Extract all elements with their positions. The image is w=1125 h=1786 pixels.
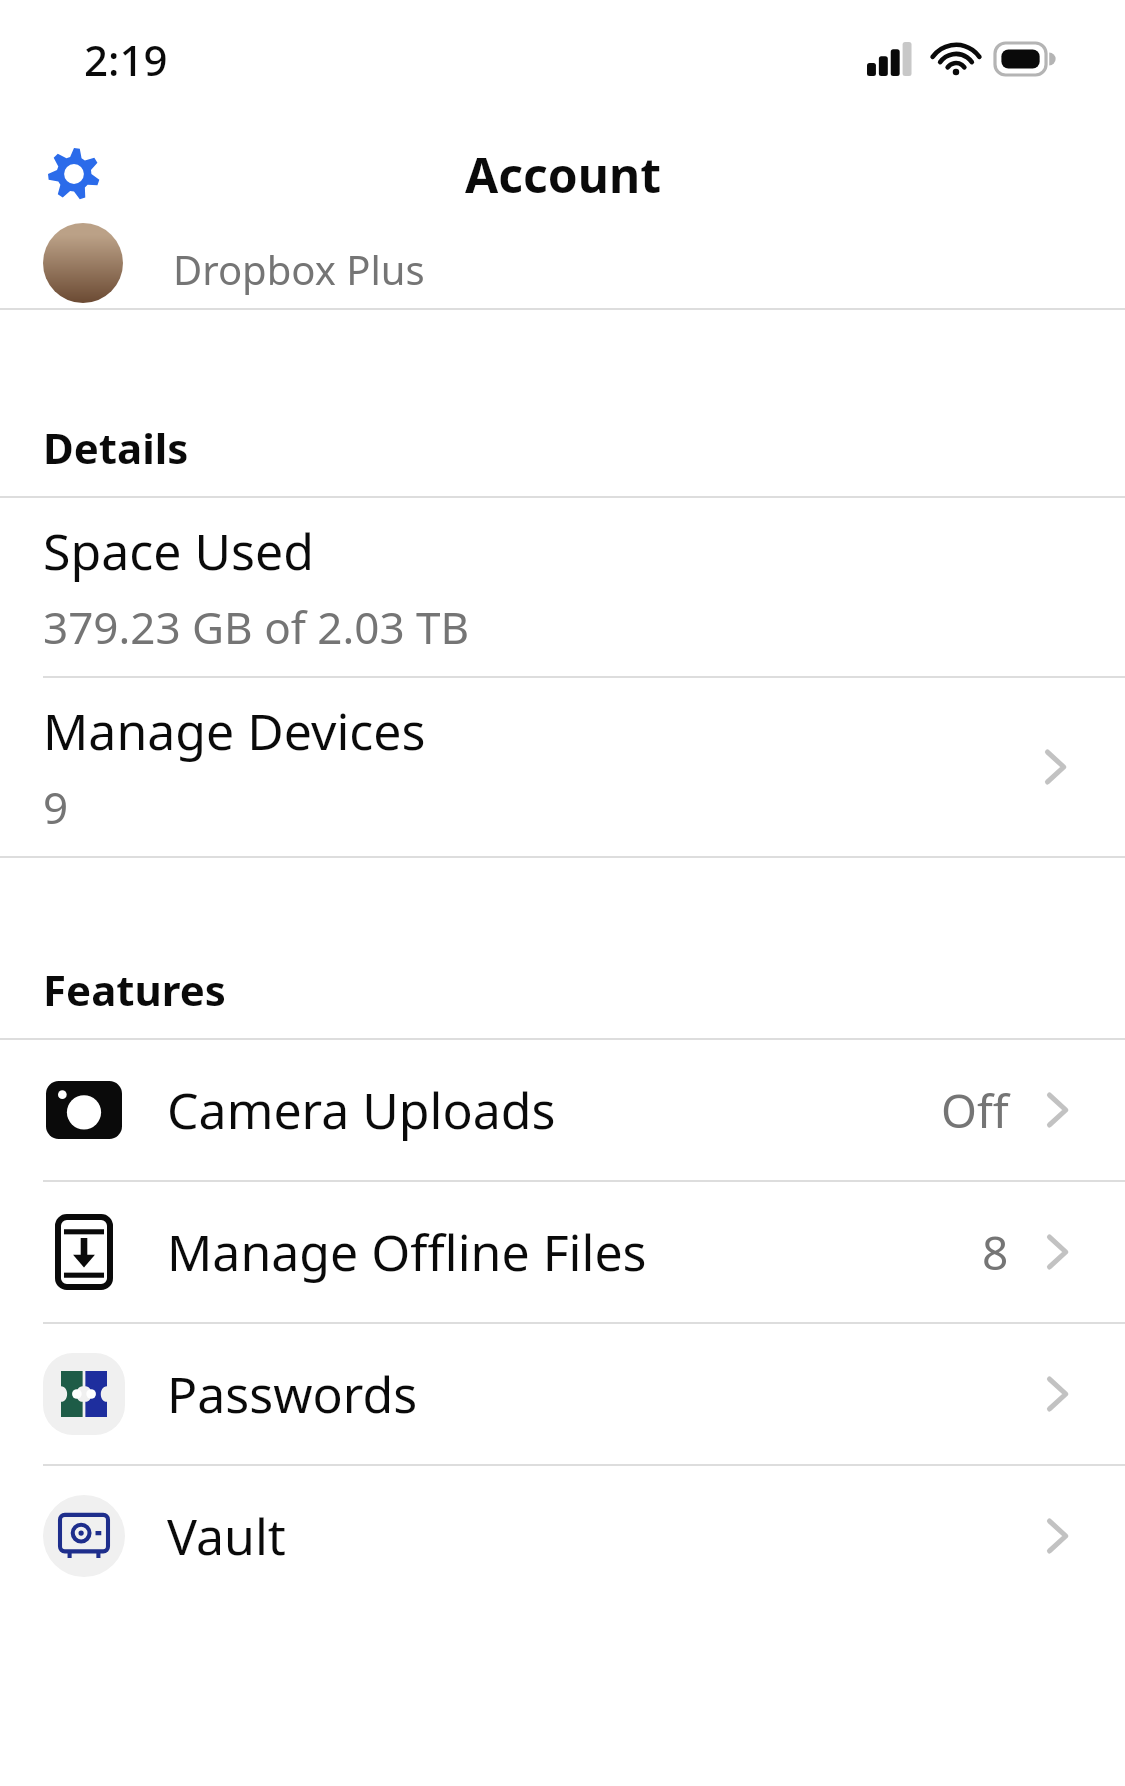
button[interactable]: Space Used xyxy=(0,498,1125,676)
staticText: 9 xyxy=(43,777,69,837)
staticText: Details xyxy=(43,419,189,476)
staticText: Manage Offline Files xyxy=(167,1218,982,1286)
button[interactable]: Dropbox Plus xyxy=(0,230,1125,308)
staticText: Dropbox Plus xyxy=(173,242,425,296)
staticText: Manage Devices xyxy=(43,697,426,765)
staticText: Vault xyxy=(167,1502,1029,1570)
staticText: Features xyxy=(43,961,226,1018)
staticText: 2:19 xyxy=(84,31,168,88)
staticText: Passwords xyxy=(167,1360,1029,1428)
staticText: Camera Uploads xyxy=(167,1076,941,1144)
button[interactable]: Vault xyxy=(0,1466,1125,1606)
staticText: Off xyxy=(941,1079,1009,1142)
button[interactable]: Passwords xyxy=(0,1324,1125,1464)
staticText: 8 xyxy=(982,1221,1009,1284)
staticText: Space Used xyxy=(43,517,314,585)
button[interactable]: Manage Devices xyxy=(0,678,1125,856)
button[interactable]: Settings xyxy=(34,134,114,214)
staticText: Account xyxy=(465,142,661,207)
button[interactable]: Manage Offline Files xyxy=(0,1182,1125,1322)
staticText: 379.23 GB of 2.03 TB xyxy=(43,597,470,657)
button[interactable]: Camera Uploads xyxy=(0,1040,1125,1180)
